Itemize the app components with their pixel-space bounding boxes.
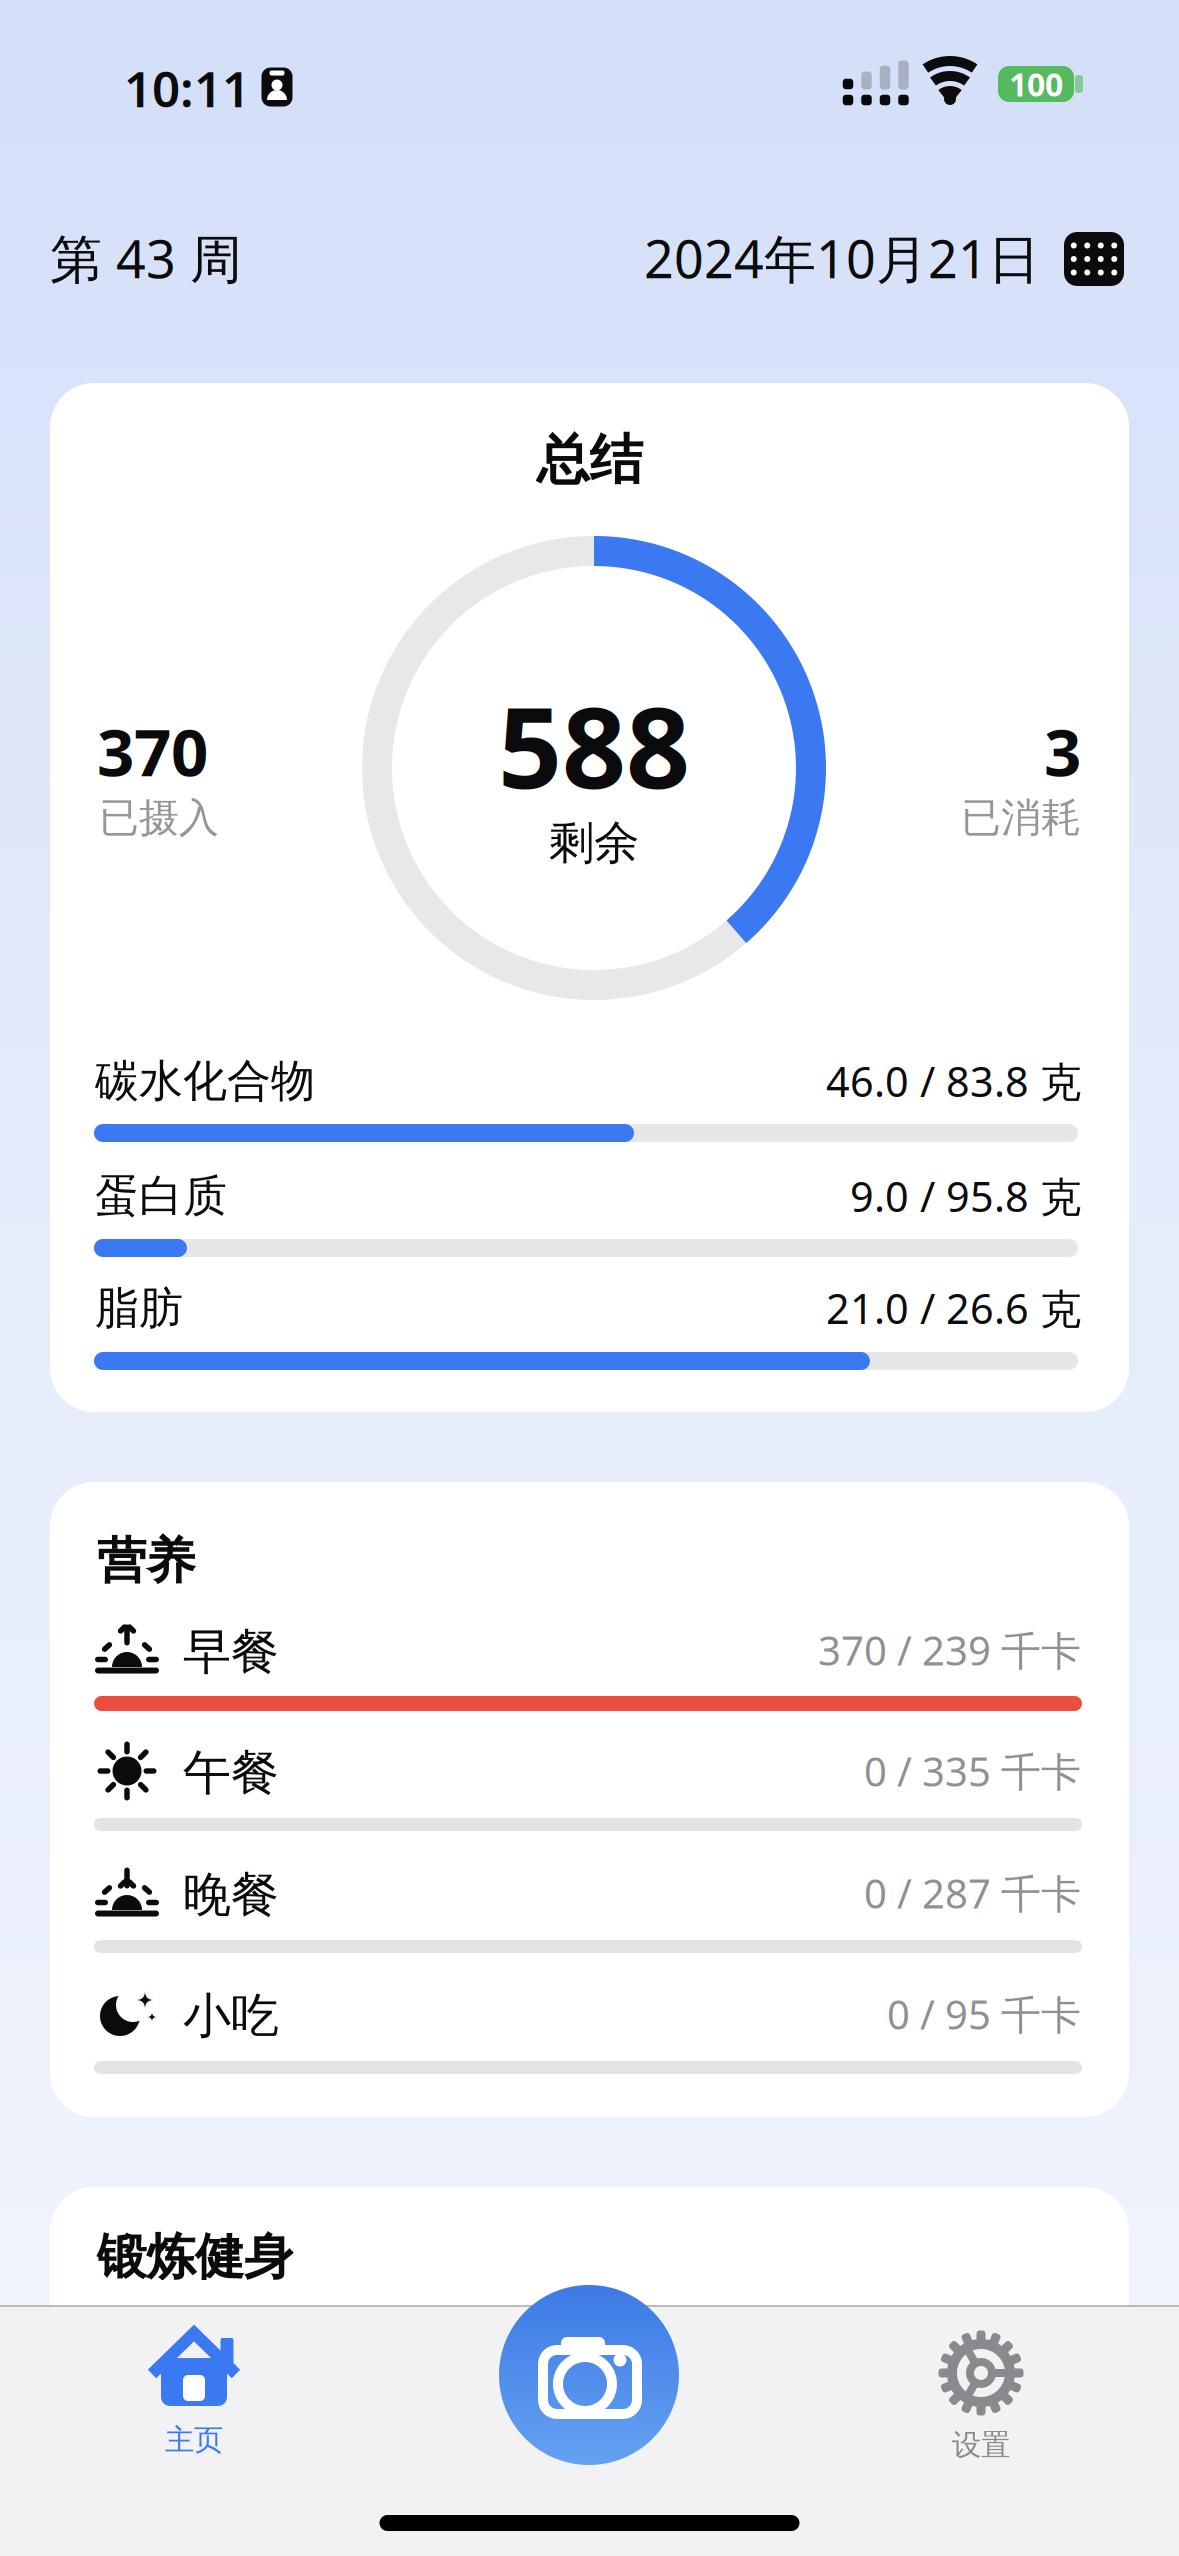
button[interactable]: 2024年10月21日 [340,229,1124,289]
staticText: 0 / 335 千卡 [864,1744,1081,1797]
staticText: 碳水化合物 [95,1054,315,1108]
staticText: 46.0 / 83.8 克 [826,1054,1081,1108]
staticText: 蛋白质 [95,1169,227,1223]
staticText: 0 / 95 千卡 [887,1987,1081,2040]
staticText: 剩余 [549,815,639,871]
staticText: 第 43 周 [50,223,242,293]
staticText: 9.0 / 95.8 克 [850,1169,1081,1223]
staticText: 已消耗 [961,793,1081,842]
button[interactable]: 小吃 [94,1976,1082,2086]
staticText: 3 [1044,708,1081,794]
button[interactable]: 主页 [44,2324,344,2464]
button[interactable]: 早餐 [94,1612,1082,1722]
button[interactable]: 午餐 [94,1733,1082,1843]
staticText: 370 [97,708,208,794]
staticText: 100 [1009,63,1063,105]
staticText: 小吃 [183,1986,279,2045]
staticText: 设置 [952,2427,1010,2463]
staticText: 晚餐 [183,1865,279,1924]
staticText: 0 / 287 千卡 [864,1866,1081,1919]
staticText: 已摄入 [99,793,219,842]
button[interactable] [497,2283,681,2467]
staticText: 2024年10月21日 [644,223,1040,293]
staticText: 脂肪 [95,1281,183,1335]
staticText: 370 / 239 千卡 [818,1623,1081,1676]
button[interactable]: 设置 [831,2319,1131,2469]
staticText: 总结 [536,427,642,493]
staticText: 营养 [97,1531,195,1591]
staticText: 主页 [165,2422,223,2458]
staticText: 588 [498,671,690,819]
staticText: 10:11 [124,55,250,121]
staticText: 午餐 [183,1743,279,1802]
staticText: 21.0 / 26.6 克 [826,1281,1081,1335]
staticText: 早餐 [183,1622,279,1681]
button[interactable]: 晚餐 [94,1855,1082,1965]
staticText: 锻炼健身 [97,2227,293,2287]
